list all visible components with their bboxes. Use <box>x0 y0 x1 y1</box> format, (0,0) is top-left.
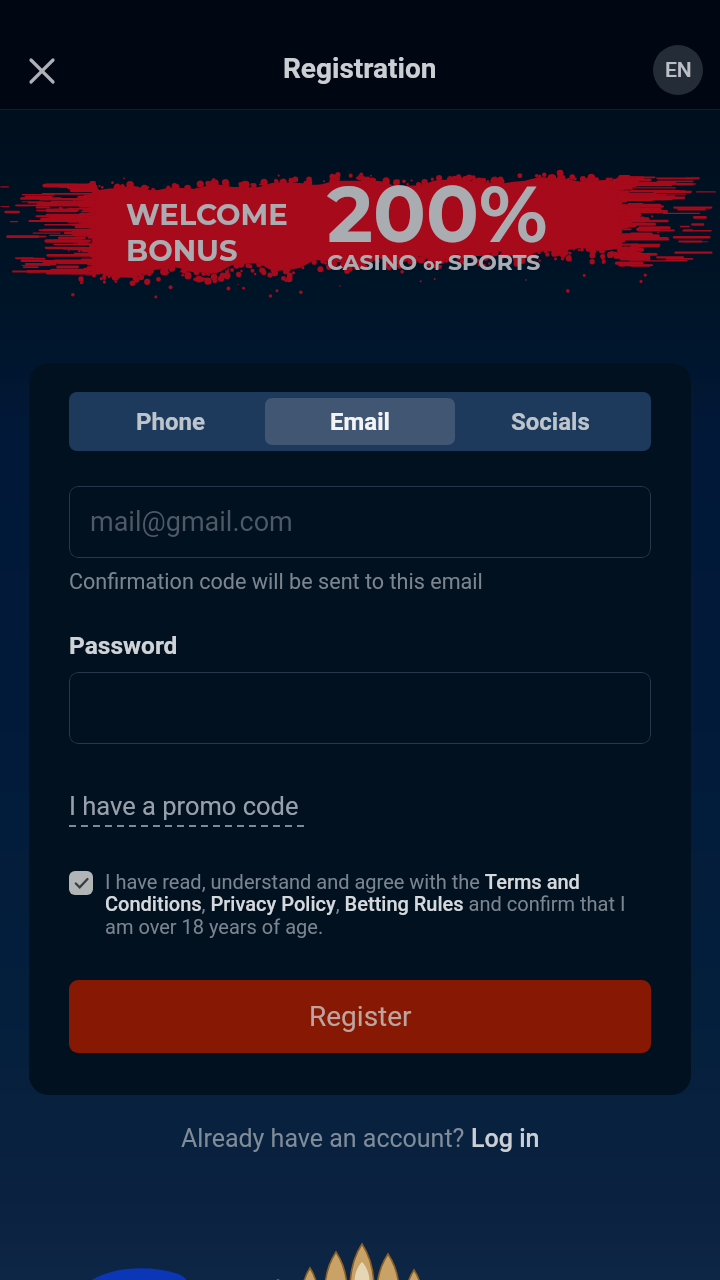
staticText: Email <box>330 408 390 436</box>
button[interactable]: I have read, understand and agree with t… <box>69 870 651 939</box>
staticText: Register <box>309 1000 412 1033</box>
staticText: mail@gmail.com <box>90 506 293 538</box>
staticText: BONUS <box>126 233 238 268</box>
staticText: Confirmation code will be sent to this e… <box>69 569 483 594</box>
button[interactable]: Close <box>18 47 66 95</box>
staticText: Registration <box>283 52 437 85</box>
staticText: Socials <box>511 408 590 436</box>
staticText: CASINO or SPORTS <box>327 249 541 276</box>
button[interactable]: Socials <box>455 398 645 445</box>
staticText: Phone <box>136 408 205 436</box>
staticText: Password <box>69 631 178 660</box>
staticText: Log in <box>471 1124 540 1153</box>
button[interactable]: Already have an account? <box>181 1124 540 1153</box>
button[interactable]: I have a promo code <box>69 791 309 827</box>
button[interactable]: Phone <box>75 398 265 445</box>
button[interactable]: mail@gmail.com <box>69 486 651 558</box>
staticText: I have a promo code <box>69 791 299 821</box>
button[interactable] <box>69 672 651 744</box>
staticText: Already have an account? <box>181 1124 471 1153</box>
staticText: WELCOME <box>126 197 288 232</box>
button[interactable]: Language EN <box>653 45 703 95</box>
button[interactable]: Register <box>69 980 651 1053</box>
staticText: EN <box>665 58 692 83</box>
button[interactable]: Email <box>265 398 455 445</box>
staticText: 200% <box>327 166 548 261</box>
staticText: I have read, understand and agree with t… <box>105 870 651 939</box>
